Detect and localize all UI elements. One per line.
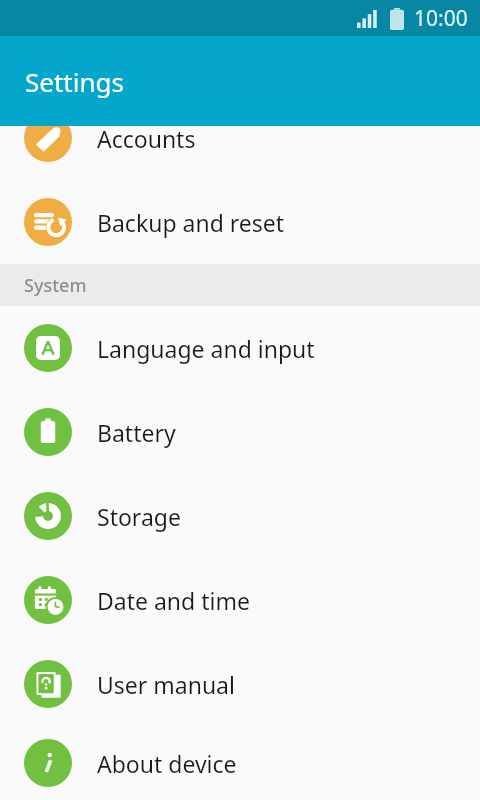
staticText: User manual [97, 669, 235, 700]
staticText: System [24, 273, 87, 298]
button[interactable]: Battery [0, 390, 480, 474]
button[interactable]: Accounts [0, 96, 480, 180]
staticText: Battery [97, 417, 176, 448]
staticText: Accounts [97, 123, 196, 154]
button[interactable]: Backup and reset [0, 180, 480, 264]
button[interactable]: Language and input [0, 306, 480, 390]
staticText: Storage [97, 501, 181, 532]
staticText: Backup and reset [97, 207, 285, 238]
button[interactable]: Date and time [0, 558, 480, 642]
staticText: About device [97, 748, 237, 779]
button[interactable]: About device [0, 726, 480, 800]
button[interactable]: User manual [0, 642, 480, 726]
staticText: Language and input [97, 333, 315, 364]
staticText: 10:00 [414, 4, 468, 33]
staticText: Date and time [97, 585, 250, 616]
button[interactable]: Storage [0, 474, 480, 558]
staticText: Settings [25, 64, 124, 99]
